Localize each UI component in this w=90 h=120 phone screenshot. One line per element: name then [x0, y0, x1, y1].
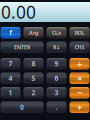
button[interactable]: .: [46, 101, 66, 113]
button[interactable]: −: [69, 87, 89, 98]
button[interactable]: R↓: [46, 41, 66, 53]
staticText: +: [77, 101, 82, 113]
staticText: CLx: [52, 29, 61, 36]
button[interactable]: 2: [23, 87, 43, 98]
staticText: 9: [54, 59, 58, 68]
button[interactable]: ÷: [69, 58, 89, 69]
staticText: −: [77, 87, 82, 99]
button[interactable]: 0: [0, 101, 43, 113]
staticText: Arg: [29, 29, 38, 36]
button[interactable]: CHS: [69, 41, 89, 53]
staticText: 0.00: [1, 0, 36, 23]
staticText: 6: [54, 74, 58, 83]
staticText: 7: [8, 59, 12, 68]
button[interactable]: 6: [46, 72, 66, 84]
staticText: 4: [8, 74, 12, 83]
button[interactable]: 7: [0, 58, 20, 69]
button[interactable]: 8: [23, 58, 43, 69]
staticText: 8: [31, 59, 35, 68]
staticText: 3: [54, 88, 58, 97]
staticText: CHS: [74, 44, 84, 51]
staticText: ×: [77, 72, 82, 84]
button[interactable]: +: [69, 101, 89, 113]
button[interactable]: 1: [0, 87, 20, 98]
button[interactable]: 4: [0, 72, 20, 84]
staticText: ÷: [77, 58, 82, 70]
staticText: 5: [31, 74, 35, 83]
staticText: 2: [31, 88, 35, 97]
button[interactable]: ENTER: [0, 41, 43, 53]
staticText: ROL: [74, 29, 84, 36]
staticText: R↓: [53, 44, 60, 51]
staticText: 0: [20, 103, 24, 112]
button[interactable]: Arg: [23, 27, 43, 38]
staticText: .: [55, 103, 57, 112]
button[interactable]: 9: [46, 58, 66, 69]
button[interactable]: 5: [23, 72, 43, 84]
staticText: f: [9, 28, 11, 37]
button[interactable]: f: [0, 27, 20, 38]
staticText: 1: [8, 88, 12, 97]
button[interactable]: ROL: [69, 27, 89, 38]
staticText: ENTER: [14, 44, 30, 51]
button[interactable]: CLx: [46, 27, 66, 38]
button[interactable]: ×: [69, 72, 89, 84]
button[interactable]: 3: [46, 87, 66, 98]
